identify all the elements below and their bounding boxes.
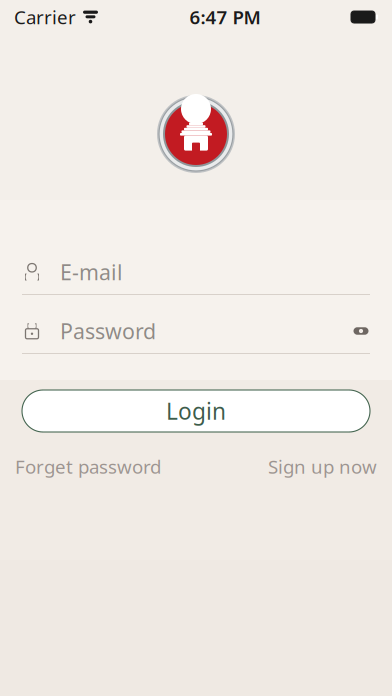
- button[interactable]: E-mail: [0, 250, 392, 294]
- staticText: E-mail: [60, 258, 123, 286]
- staticText: Carrier: [14, 5, 76, 29]
- button[interactable]: Login: [22, 390, 370, 432]
- staticText: Sign up now: [268, 454, 377, 479]
- staticText: Forget password: [15, 454, 161, 479]
- staticText: 6:47 PM: [189, 5, 260, 29]
- staticText: Password: [60, 317, 156, 345]
- staticText: Login: [166, 396, 226, 426]
- button[interactable]: Sign up now: [268, 446, 377, 487]
- button[interactable]: Forget password: [15, 446, 161, 487]
- button[interactable]: Password: [0, 309, 392, 353]
